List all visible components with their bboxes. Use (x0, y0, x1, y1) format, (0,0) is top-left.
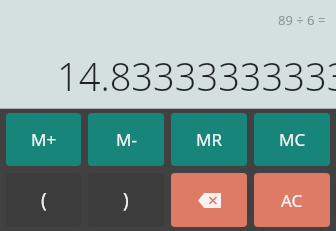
staticText: 89 ÷ 6 = (278, 11, 326, 29)
button[interactable]: AC (254, 173, 330, 227)
staticText: ( (41, 187, 47, 213)
staticText: 14.83333333333 (57, 50, 336, 102)
button[interactable]: Backspace (171, 173, 247, 227)
staticText: M+ (31, 128, 57, 151)
staticText: ) (123, 187, 129, 213)
button[interactable]: MR (171, 113, 247, 166)
staticText: M- (116, 128, 137, 151)
staticText: MR (196, 128, 222, 151)
button[interactable]: ( (6, 173, 81, 227)
button[interactable]: MC (254, 113, 330, 166)
button[interactable]: ) (88, 173, 164, 227)
button[interactable]: M- (88, 113, 164, 166)
staticText: AC (281, 189, 303, 212)
staticText: MC (279, 128, 306, 151)
button[interactable]: M+ (6, 113, 81, 166)
